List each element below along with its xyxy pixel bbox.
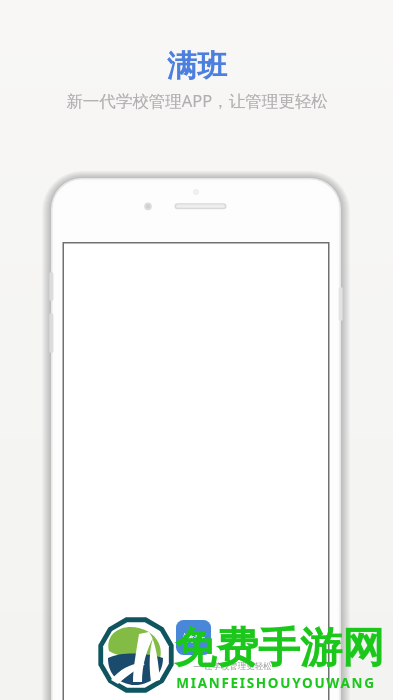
staticText: — 让学校管理更轻松 bbox=[193, 660, 272, 672]
staticText: MIANFEISHOUYOUWANG bbox=[176, 674, 376, 692]
staticText: 满班 bbox=[167, 47, 227, 85]
button[interactable]: 满班 app icon bbox=[176, 620, 211, 655]
staticText: 新一代学校管理APP，让管理更轻松 bbox=[66, 89, 328, 112]
staticText: 满班 bbox=[183, 631, 205, 645]
staticText: 免费手游网 bbox=[174, 622, 384, 675]
